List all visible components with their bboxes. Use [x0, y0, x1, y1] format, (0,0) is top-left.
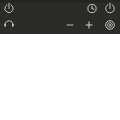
button[interactable]: Volume down	[64, 19, 77, 32]
button[interactable]: Record	[104, 19, 117, 32]
button[interactable]: Standby	[104, 2, 117, 15]
button[interactable]: Volume up	[83, 19, 96, 32]
button[interactable]: Power	[3, 2, 16, 15]
button[interactable]: Timer	[86, 2, 99, 15]
button[interactable]: Headphones	[3, 19, 16, 32]
